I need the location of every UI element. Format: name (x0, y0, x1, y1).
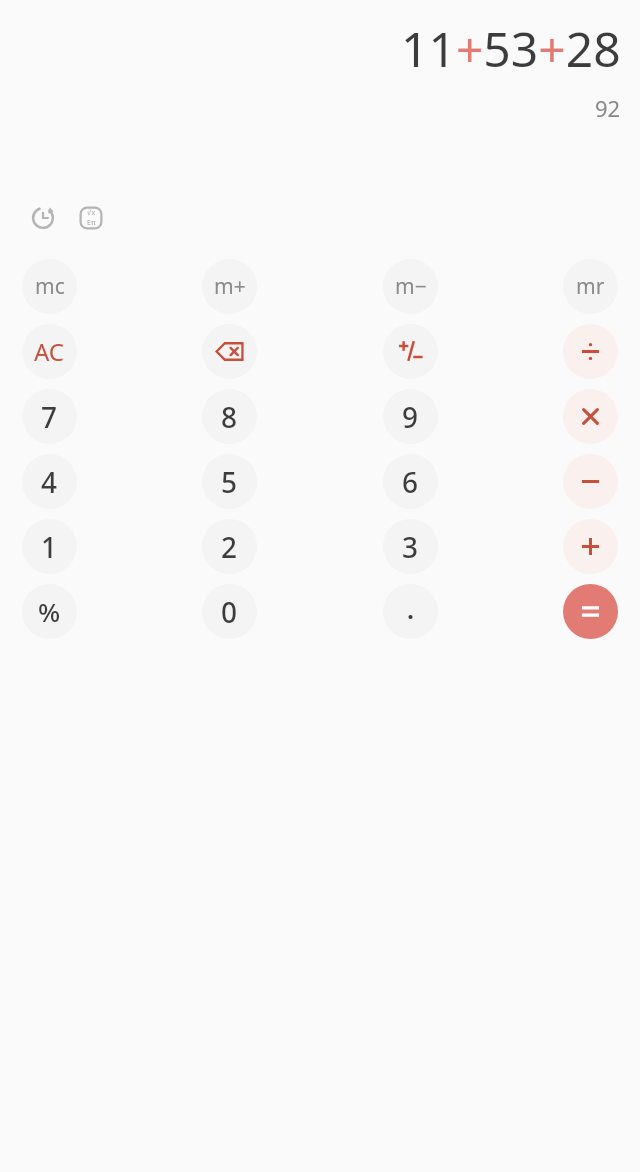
button[interactable]: 6 (383, 454, 438, 509)
button[interactable]: Minus (563, 454, 618, 509)
button[interactable]: 8 (202, 389, 257, 444)
button[interactable]: 0 (202, 584, 257, 639)
button[interactable]: 3 (383, 519, 438, 574)
staticText: mc (35, 272, 65, 301)
button[interactable]: mr (563, 259, 618, 314)
button[interactable]: 5 (202, 454, 257, 509)
button[interactable]: Backspace (202, 324, 257, 379)
staticText: Eπ (87, 218, 96, 228)
button[interactable]: mc (22, 259, 77, 314)
staticText: 0 (221, 593, 238, 631)
staticText: 8 (221, 398, 238, 436)
button[interactable]: 7 (22, 389, 77, 444)
staticText: m+ (214, 272, 246, 301)
button[interactable]: Multiply (563, 389, 618, 444)
button[interactable]: m− (383, 259, 438, 314)
staticText: AC (34, 335, 65, 368)
staticText: 3 (402, 528, 419, 566)
staticText: mr (576, 272, 605, 301)
button[interactable]: Plus (563, 519, 618, 574)
button[interactable]: 1 (22, 519, 77, 574)
staticText: % (38, 594, 61, 629)
staticText: 11+53+28 (401, 16, 621, 81)
staticText: 6 (402, 463, 419, 501)
button[interactable]: AC (22, 324, 77, 379)
staticText: 2 (221, 528, 238, 566)
button[interactable]: 9 (383, 389, 438, 444)
staticText: 7 (41, 398, 58, 436)
button[interactable]: % (22, 584, 77, 639)
staticText: 5 (221, 463, 238, 501)
button[interactable]: Equals (563, 584, 618, 639)
button[interactable]: Plus minus (383, 324, 438, 379)
button[interactable]: 4 (22, 454, 77, 509)
staticText: 1 (41, 528, 58, 566)
staticText: √x (87, 208, 96, 218)
staticText: 92 (595, 93, 621, 123)
button[interactable]: m+ (202, 259, 257, 314)
button[interactable]: 2 (202, 519, 257, 574)
staticText: m− (395, 272, 427, 301)
staticText: 9 (402, 398, 419, 436)
button[interactable]: Decimal point (383, 584, 438, 639)
staticText: 4 (41, 463, 58, 501)
button[interactable]: Divide (563, 324, 618, 379)
button[interactable]: History (26, 201, 60, 235)
button[interactable]: Scientific mode (74, 201, 108, 235)
